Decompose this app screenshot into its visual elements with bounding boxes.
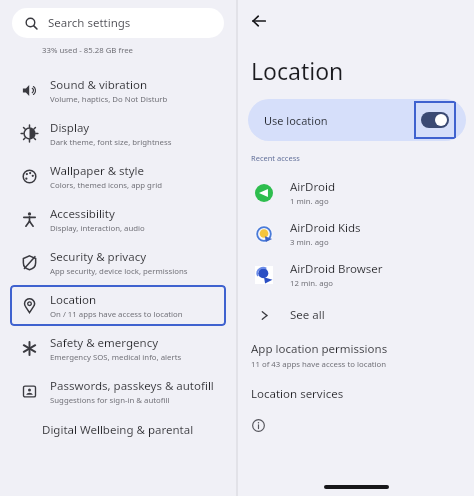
staticText: Dark theme, font size, brightness [50, 137, 172, 148]
staticText: Search settings [48, 15, 131, 31]
staticText: Safety & emergency [50, 335, 159, 351]
staticText: Security & privacy [50, 249, 147, 265]
button[interactable]: Wallpaper & style [10, 156, 226, 197]
button[interactable]: Passwords, passkeys & autofill [10, 371, 226, 412]
staticText: Recent access [251, 153, 300, 163]
staticText: 12 min. ago [290, 278, 334, 289]
button[interactable]: Security & privacy [10, 242, 226, 283]
staticText: Display, interaction, audio [50, 223, 145, 234]
staticText: Location [50, 292, 97, 308]
button[interactable]: Search settings [12, 8, 224, 38]
button[interactable]: Use location [248, 99, 466, 141]
button[interactable]: Accessibility [10, 199, 226, 240]
button[interactable]: Safety & emergency [10, 328, 226, 369]
staticText: Volume, haptics, Do Not Disturb [50, 94, 168, 105]
staticText: Emergency SOS, medical info, alerts [50, 352, 182, 363]
staticText: Passwords, passkeys & autofill [50, 378, 214, 394]
button[interactable]: App location permissions [251, 341, 474, 370]
button[interactable]: Back [244, 6, 274, 36]
staticText: App location permissions [251, 341, 388, 357]
button[interactable]: AirDroid Kids [246, 213, 466, 254]
button[interactable]: AirDroid [246, 172, 466, 213]
staticText: Suggestions for sign-in & autofill [50, 395, 170, 406]
staticText: App security, device lock, permissions [50, 266, 188, 277]
staticText: 33% used - 85.28 GB free [42, 45, 134, 56]
staticText: 3 min. ago [290, 237, 329, 248]
staticText: On / 11 apps have access to location [50, 309, 183, 320]
staticText: Use location [264, 113, 328, 128]
staticText: Location [251, 55, 344, 86]
staticText: AirDroid [290, 179, 335, 195]
staticText: Digital Wellbeing & parental [42, 422, 194, 438]
staticText: See all [290, 307, 325, 323]
staticText: Display [50, 120, 90, 136]
button[interactable]: Sound & vibration [10, 70, 226, 111]
staticText: AirDroid Kids [290, 220, 361, 236]
button[interactable]: Location [10, 285, 226, 326]
staticText: 1 min. ago [290, 196, 329, 207]
staticText: Colors, themed icons, app grid [50, 180, 162, 191]
button[interactable]: Display [10, 113, 226, 154]
staticText: Wallpaper & style [50, 163, 145, 179]
button[interactable]: Use location toggle [414, 101, 456, 139]
staticText: Accessibility [50, 206, 115, 222]
staticText: Location services [251, 386, 344, 402]
button[interactable]: Location services [251, 386, 474, 402]
button[interactable]: AirDroid Browser [246, 254, 466, 295]
staticText: AirDroid Browser [290, 261, 383, 277]
button[interactable]: See all [246, 301, 466, 329]
staticText: Sound & vibration [50, 77, 147, 93]
staticText: 11 of 43 apps have access to location [251, 359, 387, 370]
